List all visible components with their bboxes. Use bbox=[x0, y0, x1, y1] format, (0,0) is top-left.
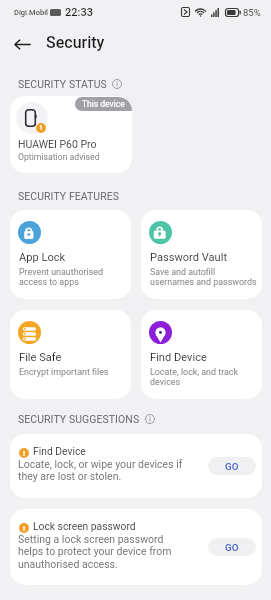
staticText: Save and autofill usernames and password… bbox=[150, 267, 257, 287]
staticText: Find Device bbox=[33, 445, 86, 457]
staticText: This device bbox=[82, 99, 125, 109]
staticText: ! bbox=[23, 524, 26, 533]
button[interactable]: File Safe bbox=[10, 310, 131, 399]
staticText: ! bbox=[40, 124, 42, 132]
staticText: Security bbox=[46, 33, 105, 52]
button[interactable]: ! bbox=[10, 509, 262, 585]
staticText: GO bbox=[225, 461, 239, 472]
staticText: Password Vault bbox=[150, 251, 228, 264]
staticText: GO bbox=[225, 542, 239, 553]
staticText: Prevent unauthorised access to apps bbox=[19, 267, 104, 287]
staticText: Setting a lock screen password helps to … bbox=[18, 533, 172, 571]
staticText: 22:33 bbox=[65, 6, 93, 19]
staticText: Optimisation advised bbox=[18, 152, 100, 162]
staticText: File Safe bbox=[19, 351, 62, 364]
button[interactable]: ! bbox=[10, 434, 262, 498]
staticText: ! bbox=[23, 449, 26, 458]
staticText: Digi.Mobil bbox=[14, 8, 48, 17]
button[interactable]: Password Vault bbox=[141, 210, 262, 299]
staticText: SECURITY SUGGESTIONS bbox=[18, 413, 140, 425]
staticText: Find Device bbox=[150, 351, 207, 364]
button[interactable]: GO bbox=[208, 538, 256, 556]
staticText: 85% bbox=[243, 7, 261, 18]
button[interactable]: Information bbox=[143, 412, 156, 425]
button[interactable]: ! bbox=[10, 96, 132, 173]
staticText: SECURITY STATUS bbox=[18, 78, 107, 90]
button[interactable]: GO bbox=[208, 457, 256, 475]
staticText: HUAWEI P60 Pro bbox=[18, 138, 97, 150]
staticText: SECURITY FEATURES bbox=[18, 190, 120, 202]
button[interactable]: Information bbox=[110, 77, 123, 90]
staticText: Locate, lock, and track devices bbox=[150, 367, 238, 387]
staticText: App Lock bbox=[19, 251, 66, 264]
staticText: Lock screen password bbox=[33, 520, 136, 532]
button[interactable]: App Lock bbox=[10, 210, 131, 299]
button[interactable]: Find Device bbox=[141, 310, 262, 399]
staticText: Encrypt important files bbox=[19, 367, 109, 377]
button[interactable]: Back bbox=[12, 34, 32, 54]
staticText: Locate, lock, or wipe your devices if th… bbox=[18, 458, 183, 483]
